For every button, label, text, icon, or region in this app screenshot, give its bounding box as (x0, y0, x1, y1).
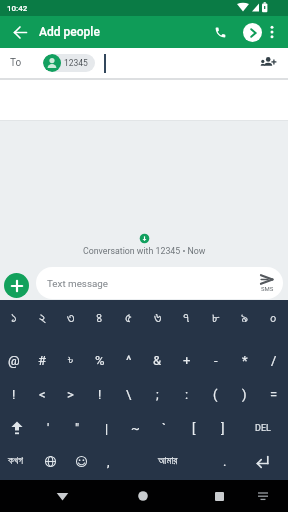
button[interactable] (252, 485, 274, 507)
staticText: ) (242, 387, 247, 402)
button[interactable]: ০ (259, 303, 288, 333)
staticText: ৯ (241, 311, 248, 325)
button[interactable]: Text message (36, 267, 283, 299)
button[interactable]: ~ (121, 414, 150, 442)
staticText: ০ (270, 311, 277, 325)
button[interactable]: [ (179, 414, 208, 442)
button[interactable] (8, 20, 32, 44)
button[interactable]: , (94, 447, 122, 475)
button[interactable]: / (259, 346, 288, 374)
button[interactable] (236, 447, 288, 475)
staticText: To (10, 57, 22, 69)
button[interactable]: % (85, 346, 114, 374)
staticText: ৳ (68, 354, 73, 367)
button[interactable]: - (201, 346, 230, 374)
staticText: ৭ (183, 311, 190, 325)
staticText: ২ (39, 311, 46, 325)
staticText: ^ (126, 353, 132, 368)
staticText: ' (47, 421, 50, 436)
staticText: : (185, 387, 189, 402)
staticText: + (183, 353, 191, 368)
staticText: ( (213, 387, 218, 402)
button[interactable]: . (214, 447, 236, 475)
staticText: @ (8, 353, 20, 368)
staticText: Conversation with 12345 • Now (83, 246, 206, 256)
staticText: কখগ (8, 456, 24, 466)
button[interactable]: ( (201, 380, 230, 408)
staticText: আমার (158, 456, 178, 467)
button[interactable]: " (63, 414, 92, 442)
button[interactable]: ` (150, 414, 179, 442)
staticText: ! (12, 387, 16, 402)
staticText: SMS (261, 285, 274, 292)
button[interactable]: ২ (28, 303, 56, 333)
button[interactable]: < (28, 380, 56, 408)
button[interactable]: ! (0, 380, 28, 408)
button[interactable]: ৩ (56, 303, 85, 333)
staticText: ৫ (125, 311, 132, 325)
staticText: DEL (255, 423, 271, 434)
staticText: ! (98, 387, 102, 402)
button[interactable] (262, 22, 282, 42)
button[interactable]: ১ (0, 303, 28, 333)
button[interactable]: \ (114, 380, 143, 408)
staticText: < (39, 387, 46, 402)
button[interactable]: ! (85, 380, 114, 408)
button[interactable]: 12345 (43, 54, 95, 72)
button[interactable]: কখগ (0, 447, 32, 475)
button[interactable]: & (143, 346, 172, 374)
button[interactable] (243, 23, 262, 42)
staticText: ৬ (154, 311, 162, 325)
staticText: ~ (131, 421, 140, 436)
staticText: [ (192, 421, 196, 436)
button[interactable]: ৪ (85, 303, 114, 333)
button[interactable]: ' (34, 414, 63, 442)
button[interactable]: @ (0, 346, 28, 374)
staticText: Add people (39, 25, 100, 39)
staticText: ; (156, 387, 159, 402)
button[interactable]: ৯ (230, 303, 259, 333)
button[interactable]: DEL (237, 414, 288, 442)
button[interactable]: ] (208, 414, 237, 442)
button[interactable] (205, 482, 233, 510)
button[interactable]: | (92, 414, 121, 442)
button[interactable]: : (172, 380, 201, 408)
button[interactable]: ৳ (56, 346, 85, 374)
button[interactable] (4, 273, 29, 298)
staticText: / (271, 353, 277, 368)
staticText: ৪ (96, 311, 103, 325)
staticText: , (107, 454, 110, 469)
staticText: 12345 (64, 58, 88, 68)
button[interactable]: ^ (114, 346, 143, 374)
staticText: ৮ (212, 311, 220, 325)
button[interactable] (32, 447, 68, 475)
button[interactable]: ৬ (143, 303, 172, 333)
button[interactable]: ) (230, 380, 259, 408)
button[interactable] (259, 54, 277, 72)
button[interactable]: * (230, 346, 259, 374)
staticText: * (242, 353, 248, 368)
button[interactable]: ; (143, 380, 172, 408)
button[interactable]: > (56, 380, 85, 408)
button[interactable]: + (172, 346, 201, 374)
button[interactable]: # (28, 346, 56, 374)
staticText: = (270, 387, 278, 402)
staticText: & (153, 353, 162, 368)
button[interactable]: = (259, 380, 288, 408)
button[interactable] (208, 20, 232, 44)
staticText: " (75, 421, 80, 436)
staticText: - (214, 353, 218, 368)
staticText: Text message (47, 278, 108, 289)
staticText: . (223, 454, 227, 469)
button[interactable]: ৮ (201, 303, 230, 333)
button[interactable] (48, 482, 76, 510)
staticText: 10:42 (7, 4, 28, 13)
staticText: % (95, 353, 105, 368)
button[interactable]: ৫ (114, 303, 143, 333)
staticText: > (67, 387, 74, 402)
button[interactable]: আমার (122, 447, 214, 475)
button[interactable] (129, 482, 157, 510)
button[interactable] (0, 414, 34, 442)
button[interactable] (68, 447, 94, 475)
button[interactable]: ৭ (172, 303, 201, 333)
